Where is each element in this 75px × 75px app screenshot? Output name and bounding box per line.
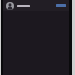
button[interactable]: Account (6, 2, 14, 10)
button[interactable]: Account (3, 0, 69, 11)
button[interactable]: Switch account (56, 4, 66, 7)
